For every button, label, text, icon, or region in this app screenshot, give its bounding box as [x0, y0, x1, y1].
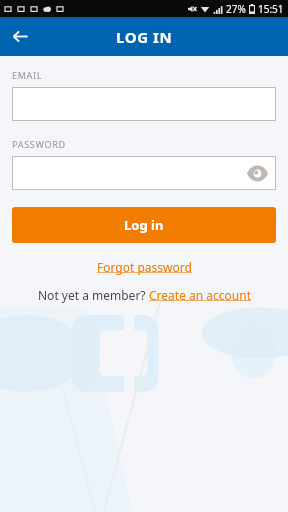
button[interactable]: Log in [12, 207, 276, 243]
staticText: Create an account [149, 287, 251, 303]
staticText: EMAIL [12, 69, 43, 81]
staticText: LOG IN [116, 27, 173, 47]
button[interactable]: Show password [12, 156, 276, 190]
button[interactable]: Back [0, 17, 40, 56]
button[interactable] [12, 87, 276, 121]
button[interactable]: Create an account [149, 287, 251, 303]
button[interactable]: Forgot password [93, 257, 196, 277]
staticText: Log in [124, 216, 164, 234]
button[interactable]: Show password [244, 160, 270, 186]
staticText: Forgot password [97, 259, 192, 275]
staticText: 27% [226, 2, 246, 16]
staticText: Not yet a member? [38, 287, 149, 303]
staticText: PASSWORD [12, 138, 66, 150]
staticText: 15:51 [258, 2, 284, 16]
